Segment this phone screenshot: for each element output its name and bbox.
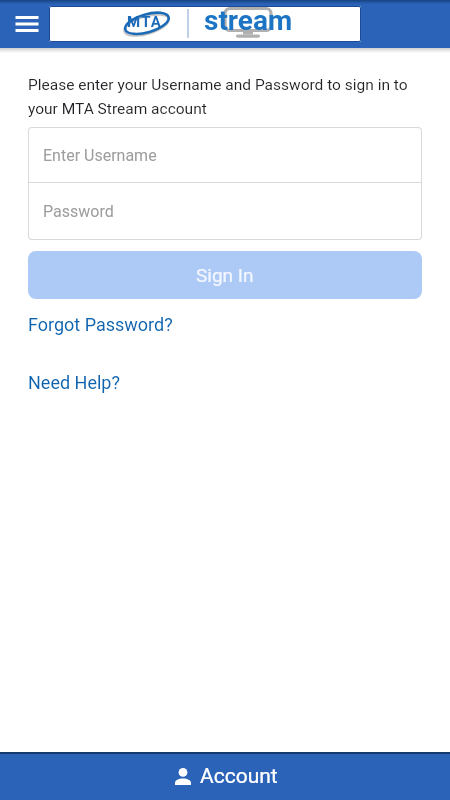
staticText: Sign In <box>196 264 254 286</box>
button[interactable]: Enter Username <box>28 127 422 183</box>
staticText: Please enter your Username and Password … <box>28 76 422 118</box>
staticText: MTA <box>127 13 163 31</box>
staticText: Account <box>200 764 278 789</box>
button[interactable]: Need Help? <box>28 372 120 393</box>
staticText: Forgot Password? <box>28 314 173 335</box>
button[interactable]: Sign In <box>28 251 422 299</box>
staticText: Password <box>43 202 114 221</box>
staticText: Enter Username <box>43 146 157 165</box>
button[interactable]: Password <box>28 182 422 240</box>
staticText: Need Help? <box>28 372 120 393</box>
button[interactable]: Account <box>0 752 450 800</box>
button[interactable] <box>8 5 46 43</box>
button[interactable]: Forgot Password? <box>28 314 173 335</box>
staticText: stream <box>204 4 293 37</box>
